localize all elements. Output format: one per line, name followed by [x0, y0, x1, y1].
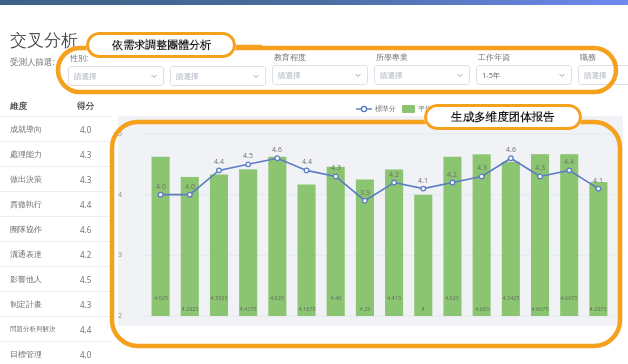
- button[interactable]: 請選擇: [374, 65, 470, 85]
- staticText: 4.25: [353, 305, 377, 312]
- button[interactable]: 問題分析與解決: [0, 317, 112, 341]
- staticText: 4.2925: [178, 305, 202, 312]
- staticText: 4.4175: [236, 305, 260, 312]
- staticText: 4.6: [80, 224, 92, 235]
- staticText: 依需求調整團體分析: [112, 38, 211, 52]
- button[interactable]: 請選擇: [68, 66, 164, 86]
- staticText: 4.415: [382, 294, 406, 301]
- staticText: 4.1: [589, 176, 607, 186]
- staticText: 4.4: [560, 157, 578, 167]
- staticText: 4.2075: [586, 305, 610, 312]
- button[interactable]: 處理能力: [0, 142, 112, 166]
- staticText: 性別:: [70, 52, 89, 63]
- button[interactable]: 團隊協作: [0, 217, 112, 241]
- staticText: 職務: [580, 52, 596, 62]
- staticText: 交叉分析: [10, 30, 78, 51]
- staticText: 4.3: [80, 299, 92, 310]
- staticText: 4: [411, 305, 435, 312]
- button[interactable]: 成就導向: [0, 117, 112, 141]
- staticText: 5: [118, 129, 123, 139]
- staticText: 維度: [10, 101, 27, 112]
- staticText: 4.6: [268, 145, 286, 155]
- button[interactable]: 目標管理: [0, 342, 112, 364]
- staticText: 生成多维度团体报告: [451, 110, 555, 124]
- staticText: 4.2: [385, 170, 403, 180]
- staticText: 成就導向: [10, 124, 42, 134]
- staticText: 請選擇: [584, 71, 607, 80]
- staticText: 4.625: [149, 294, 173, 301]
- button[interactable]: 請選擇: [272, 65, 368, 85]
- staticText: 4.3325: [207, 294, 231, 301]
- staticText: 貫徹執行: [10, 199, 42, 209]
- staticText: 請選擇: [176, 72, 199, 81]
- button[interactable]: 溝通表達: [0, 242, 112, 266]
- staticText: 4.625: [265, 294, 289, 301]
- button[interactable]: 貫徹執行: [0, 192, 112, 216]
- staticText: 4.1: [414, 176, 432, 186]
- staticText: 4.0: [80, 349, 92, 360]
- staticText: 4.665: [470, 305, 494, 312]
- staticText: 請選擇: [278, 71, 301, 80]
- staticText: 受測人篩選:: [10, 56, 55, 68]
- button[interactable]: 1-5年: [476, 65, 572, 85]
- staticText: 4.4: [210, 157, 228, 167]
- staticText: 4.2: [80, 249, 92, 260]
- staticText: 4.3: [327, 163, 345, 173]
- staticText: 目標管理: [10, 349, 42, 359]
- button[interactable]: 做出決策: [0, 167, 112, 191]
- staticText: 4.5: [80, 274, 92, 285]
- staticText: 4.1675: [295, 305, 319, 312]
- button[interactable]: 請選擇: [578, 65, 628, 85]
- staticText: 平均分: [418, 104, 439, 113]
- staticText: 4.6: [502, 145, 520, 155]
- button[interactable]: 請選擇: [170, 66, 266, 86]
- staticText: 處理能力: [10, 149, 42, 159]
- staticText: 4.0: [80, 124, 92, 135]
- staticText: 4.0: [152, 182, 170, 192]
- staticText: 4.4: [80, 324, 92, 335]
- staticText: 2: [118, 311, 123, 321]
- staticText: 4.4: [298, 157, 316, 167]
- staticText: 4.5425: [499, 294, 523, 301]
- staticText: 請選擇: [74, 72, 97, 81]
- staticText: 標準分: [375, 104, 396, 113]
- staticText: 制定計畫: [10, 299, 42, 309]
- staticText: 問題分析與解決: [10, 325, 56, 333]
- staticText: 工作年資: [478, 52, 510, 62]
- staticText: 4.5: [239, 151, 257, 161]
- staticText: 3.9: [356, 188, 374, 198]
- staticText: 做出決策: [10, 174, 42, 184]
- staticText: 4.6675: [557, 294, 581, 301]
- staticText: 4.3: [473, 163, 491, 173]
- staticText: 團隊協作: [10, 224, 42, 234]
- staticText: 請選擇: [380, 71, 403, 80]
- button[interactable]: 影響他人: [0, 267, 112, 291]
- staticText: 所學專業: [376, 52, 408, 62]
- staticText: 4.6675: [528, 305, 552, 312]
- staticText: 1-5年: [482, 70, 501, 80]
- button[interactable]: 生成多维度团体报告: [424, 104, 582, 130]
- staticText: 4.3: [80, 174, 92, 185]
- staticText: 4.4: [80, 199, 92, 210]
- button[interactable]: 制定計畫: [0, 292, 112, 316]
- staticText: 4.3: [80, 149, 92, 160]
- staticText: 4.2: [443, 170, 461, 180]
- staticText: 4: [118, 190, 123, 200]
- staticText: 得分: [77, 101, 94, 112]
- staticText: 4.3: [531, 163, 549, 173]
- staticText: 4.625: [440, 294, 464, 301]
- staticText: 4.46: [324, 294, 348, 301]
- staticText: 4.0: [181, 182, 199, 192]
- staticText: 3: [118, 250, 123, 260]
- button[interactable]: 依需求調整團體分析: [86, 32, 236, 58]
- staticText: 影響他人: [10, 274, 42, 284]
- staticText: 溝通表達: [10, 249, 42, 259]
- staticText: 教育程度: [274, 52, 306, 62]
